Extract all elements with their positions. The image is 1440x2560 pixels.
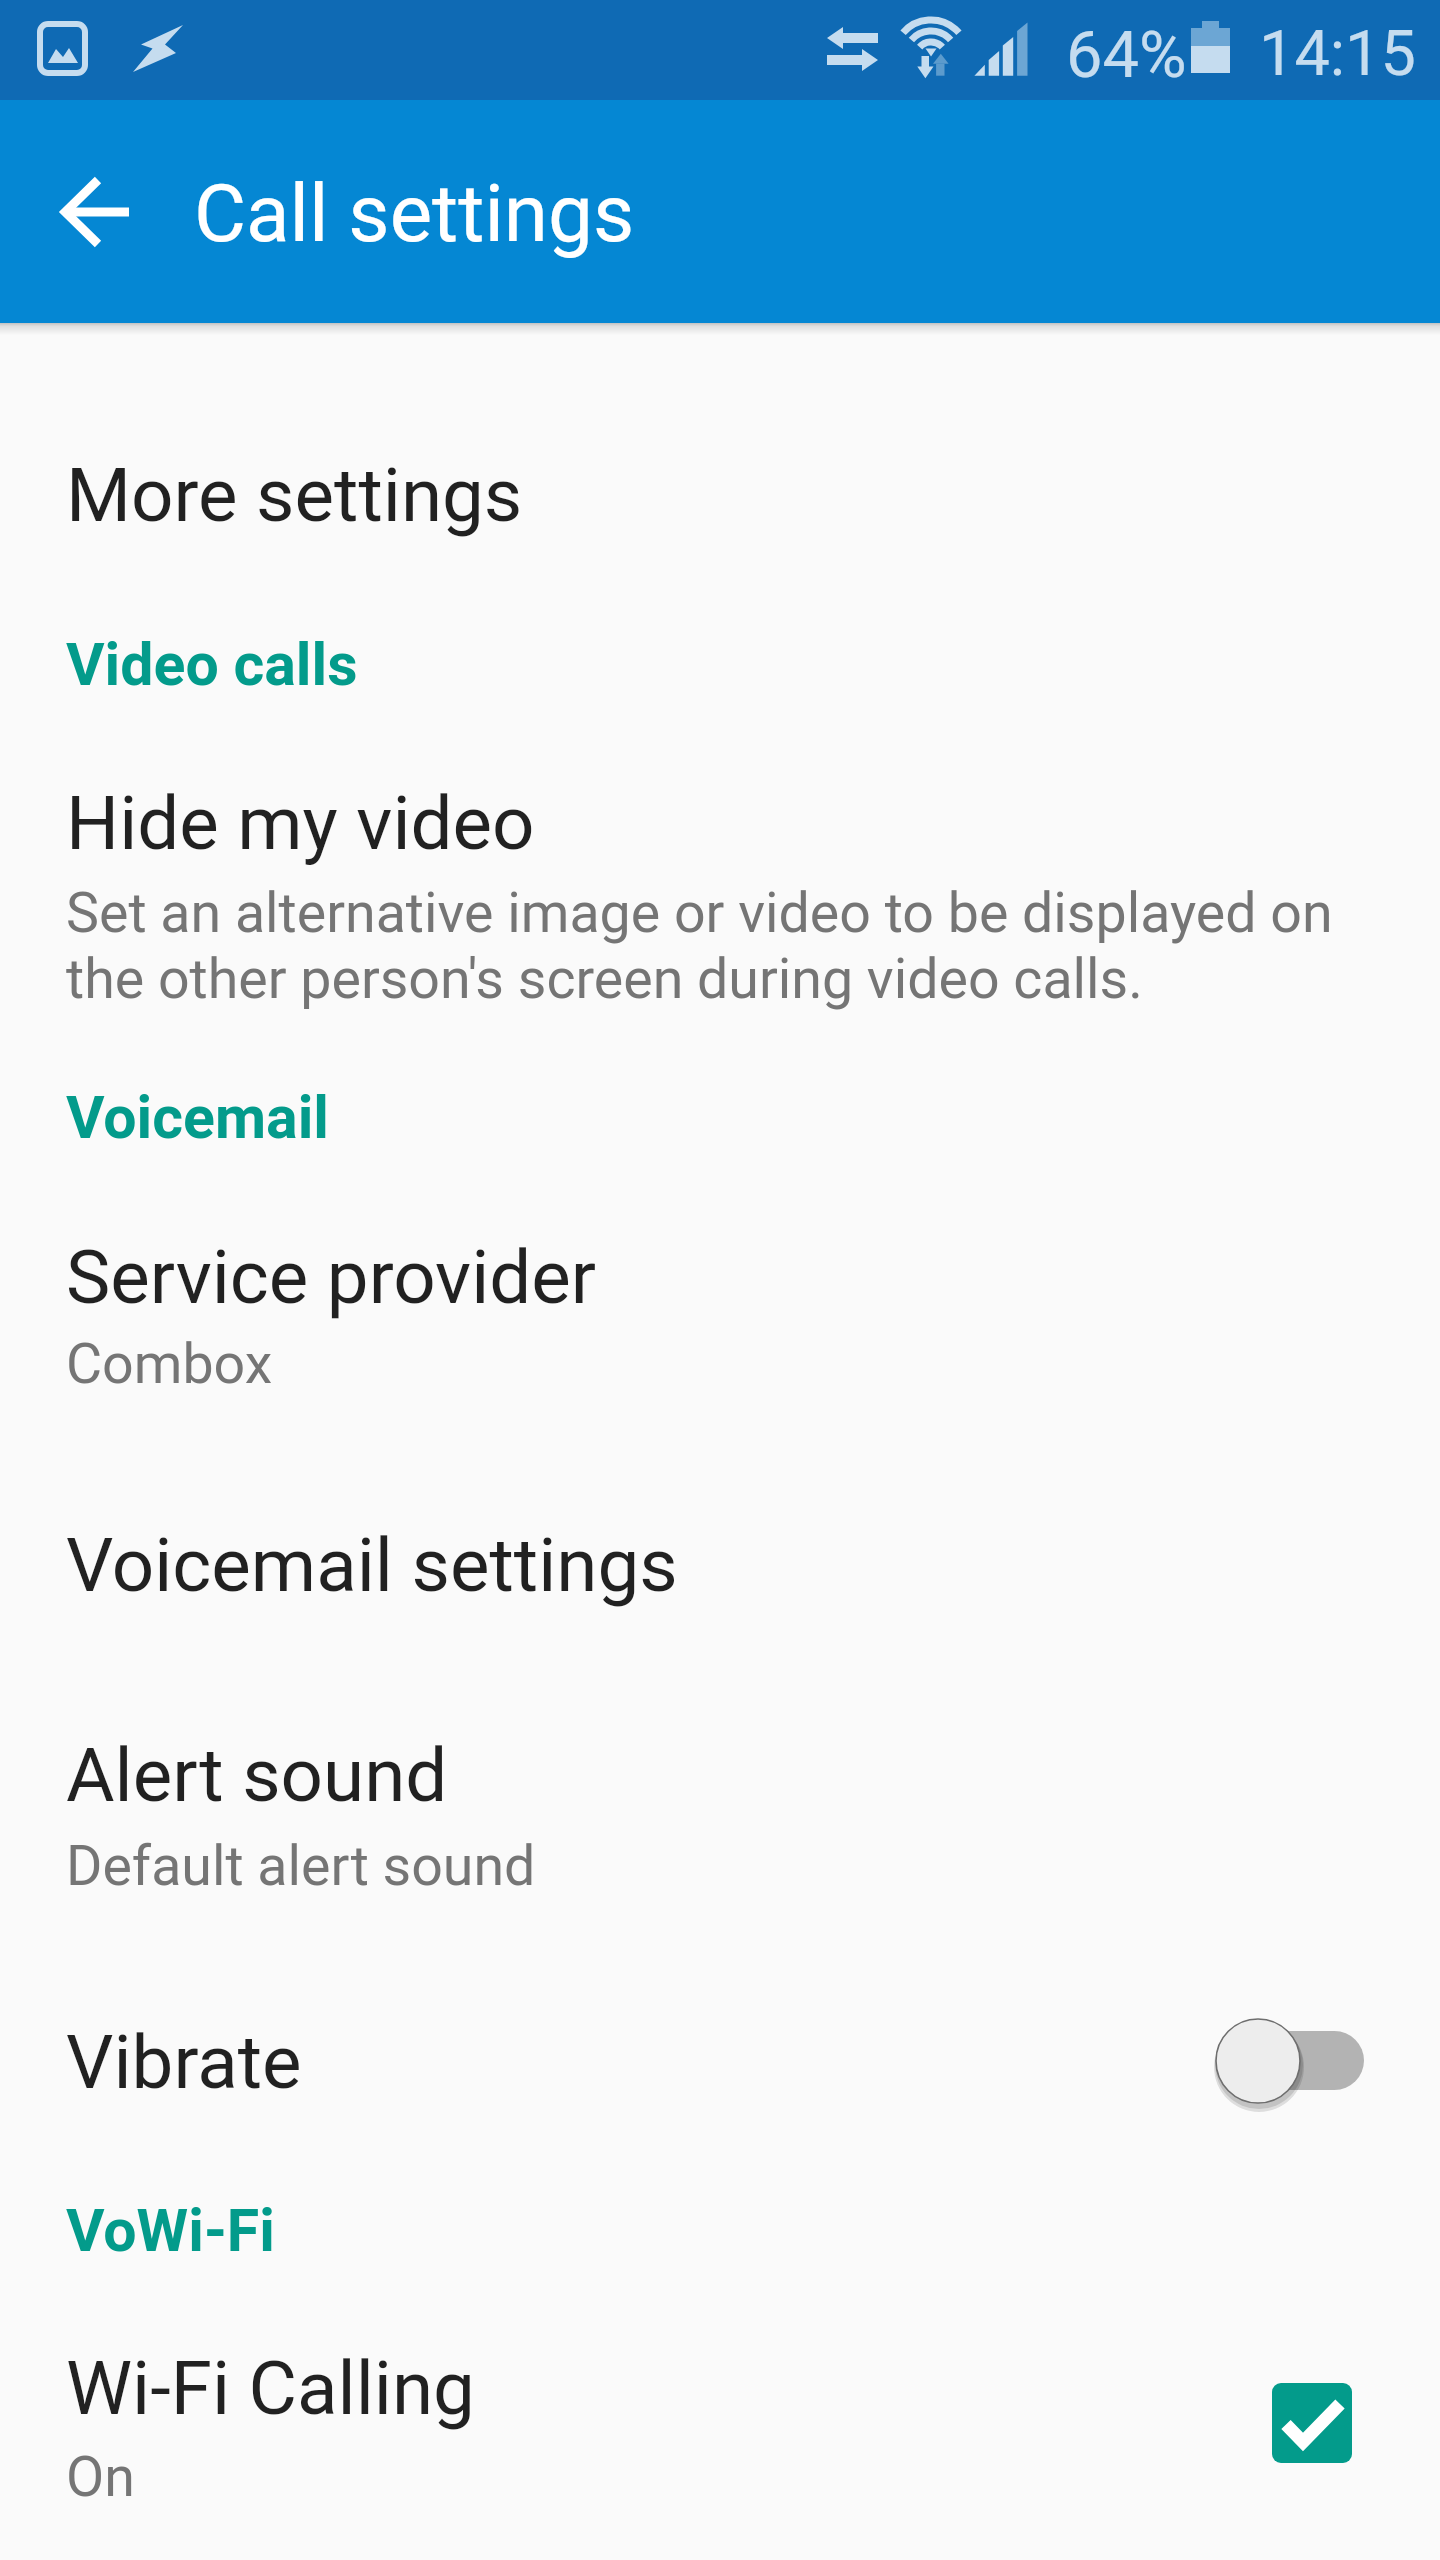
button[interactable]: [0, 1672, 1440, 1922]
staticText: Combox: [66, 1332, 273, 1397]
button[interactable]: Navigate up: [35, 152, 155, 272]
staticText: On: [66, 2445, 135, 2510]
staticText: Hide my video: [66, 780, 535, 867]
staticText: Vibrate: [66, 2019, 302, 2106]
staticText: Video calls: [66, 630, 358, 699]
staticText: 14:15: [1259, 17, 1416, 91]
button[interactable]: [0, 382, 1440, 582]
staticText: Set an alternative image or video to be …: [66, 881, 1333, 1012]
button[interactable]: [0, 1175, 1440, 1435]
staticText: VoWi-Fi: [66, 2196, 275, 2265]
button[interactable]: Vibrate, off: [1195, 2010, 1385, 2120]
staticText: 64%: [1066, 17, 1187, 93]
staticText: More settings: [66, 452, 523, 539]
staticText: Voicemail: [66, 1083, 329, 1152]
staticText: Service provider: [66, 1234, 597, 1321]
staticText: Default alert sound: [66, 1834, 536, 1899]
button[interactable]: [0, 2286, 1440, 2516]
button[interactable]: [0, 720, 1440, 1070]
staticText: Wi-Fi Calling: [66, 2345, 475, 2432]
staticText: Call settings: [194, 167, 635, 261]
button[interactable]: [0, 1960, 1440, 2160]
button[interactable]: [0, 1462, 1440, 1662]
staticText: Alert sound: [66, 1732, 448, 1819]
button[interactable]: Wi-Fi Calling, on: [1272, 2383, 1352, 2463]
staticText: Voicemail settings: [66, 1522, 678, 1609]
